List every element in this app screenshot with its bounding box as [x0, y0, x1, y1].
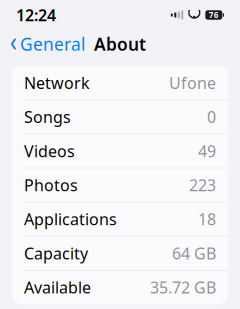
- button[interactable]: Songs: [12, 100, 228, 134]
- staticText: About: [94, 32, 146, 55]
- button[interactable]: Available: [12, 271, 228, 304]
- staticText: General: [20, 32, 85, 55]
- button[interactable]: Videos: [12, 134, 228, 168]
- staticText: 49: [198, 140, 216, 161]
- staticText: 12:24: [16, 4, 56, 26]
- button[interactable]: Capacity: [12, 236, 228, 271]
- staticText: Network: [24, 72, 90, 93]
- staticText: Applications: [24, 208, 117, 230]
- button[interactable]: Photos: [12, 168, 228, 202]
- staticText: 76: [209, 10, 219, 20]
- staticText: 64 GB: [172, 243, 216, 264]
- staticText: Ufone: [169, 72, 216, 93]
- staticText: Videos: [24, 140, 75, 161]
- button[interactable]: Network: [12, 66, 228, 100]
- staticText: Songs: [24, 106, 71, 127]
- staticText: Photos: [24, 174, 78, 196]
- staticText: 0: [207, 106, 216, 127]
- staticText: 35.72 GB: [150, 277, 216, 298]
- staticText: Available: [24, 277, 91, 298]
- button[interactable]: General: [0, 26, 95, 61]
- button[interactable]: Applications: [12, 202, 228, 236]
- staticText: 18: [198, 208, 216, 230]
- staticText: 223: [189, 174, 216, 196]
- staticText: Capacity: [24, 243, 88, 264]
